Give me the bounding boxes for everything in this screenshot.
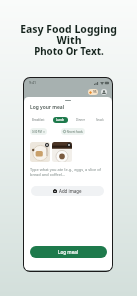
staticText: 9:41 xyxy=(29,80,37,85)
button[interactable]: Lunch xyxy=(53,117,68,123)
staticText: Breakfast xyxy=(32,118,45,122)
staticText: With xyxy=(56,33,82,47)
staticText: 0:00 PM xyxy=(32,130,42,134)
staticText: Type what you ate (e.g., eggs, a slice o… xyxy=(30,167,101,177)
button[interactable]: Profile xyxy=(101,89,107,95)
staticText: Snack xyxy=(96,118,104,122)
staticText: Add image xyxy=(59,188,82,194)
staticText: Lunch xyxy=(56,118,65,122)
button[interactable]: Add image xyxy=(31,186,104,196)
button[interactable]: Dinner xyxy=(73,117,88,123)
staticText: Dinner xyxy=(76,118,85,122)
staticText: Easy Food Logging xyxy=(20,22,117,36)
button[interactable]: Breakfast xyxy=(29,117,48,123)
staticText: Log your meal xyxy=(30,104,65,111)
button[interactable]: Remove image xyxy=(45,143,49,147)
staticText: Log meal xyxy=(58,249,79,255)
button[interactable]: Snack xyxy=(93,117,107,123)
staticText: 95 xyxy=(93,90,97,94)
staticText: Recent foods xyxy=(67,130,83,134)
button[interactable]: Streak xyxy=(88,89,98,95)
button[interactable]: 0:00 PM xyxy=(30,128,47,135)
button[interactable]: Log meal xyxy=(30,246,107,258)
button[interactable]: Remove image xyxy=(67,143,71,147)
button[interactable]: Recent foods xyxy=(61,128,85,135)
staticText: Photo Or Text. xyxy=(34,45,104,58)
